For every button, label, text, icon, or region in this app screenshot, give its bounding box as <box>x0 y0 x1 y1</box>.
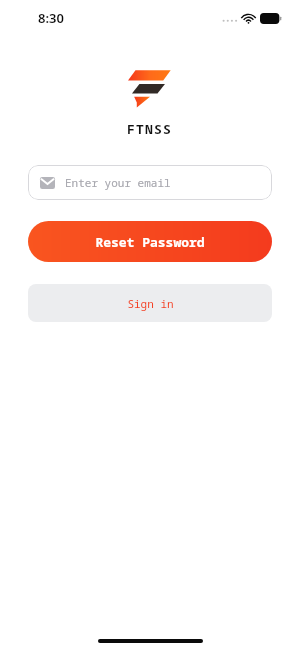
button[interactable]: Enter your email <box>28 165 272 200</box>
staticText: Enter your email <box>65 175 171 190</box>
staticText: FTNSS <box>127 120 173 138</box>
staticText: 8:30 <box>38 9 64 27</box>
button[interactable]: Reset Password <box>28 221 272 262</box>
button[interactable]: Sign in <box>28 284 272 322</box>
staticText: Sign in <box>127 296 174 311</box>
staticText: Reset Password <box>95 233 205 251</box>
